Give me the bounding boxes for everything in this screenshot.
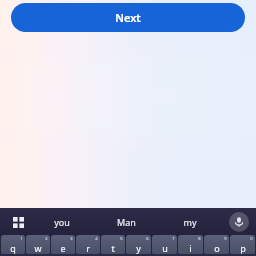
staticText: 7: [172, 236, 175, 241]
staticText: 1: [20, 236, 23, 241]
button[interactable]: 7: [152, 235, 177, 254]
button[interactable]: you: [30, 211, 94, 233]
staticText: e: [60, 242, 66, 254]
staticText: 6: [146, 236, 149, 241]
staticText: 9: [224, 236, 227, 241]
staticText: 5: [120, 236, 123, 241]
staticText: 2: [45, 236, 48, 241]
staticText: 3: [70, 236, 73, 241]
staticText: 4: [95, 236, 98, 241]
staticText: Next: [115, 10, 141, 25]
button[interactable]: 0: [230, 235, 255, 254]
button[interactable]: 2: [26, 235, 50, 254]
staticText: you: [54, 216, 70, 228]
staticText: Man: [117, 216, 136, 228]
staticText: q: [10, 242, 16, 254]
staticText: o: [214, 242, 220, 254]
staticText: my: [183, 216, 197, 228]
staticText: i: [189, 242, 192, 254]
staticText: 0: [250, 236, 253, 241]
button[interactable]: 6: [126, 235, 151, 254]
button[interactable]: Man: [94, 211, 158, 233]
button[interactable]: my: [158, 211, 222, 233]
staticText: p: [240, 242, 246, 254]
staticText: u: [162, 242, 168, 254]
button[interactable]: 8: [178, 235, 203, 254]
button[interactable]: 3: [51, 235, 75, 254]
button[interactable]: 5: [101, 235, 125, 254]
button[interactable]: Voice input: [229, 212, 249, 232]
staticText: r: [86, 242, 90, 254]
button[interactable]: 9: [204, 235, 229, 254]
button[interactable]: Next: [11, 3, 245, 32]
staticText: t: [111, 242, 115, 254]
button[interactable]: 1: [1, 235, 25, 254]
button[interactable]: 4: [76, 235, 100, 254]
button[interactable]: Switch keyboard: [8, 212, 28, 232]
staticText: y: [136, 242, 141, 254]
staticText: w: [34, 242, 42, 254]
staticText: 8: [198, 236, 201, 241]
